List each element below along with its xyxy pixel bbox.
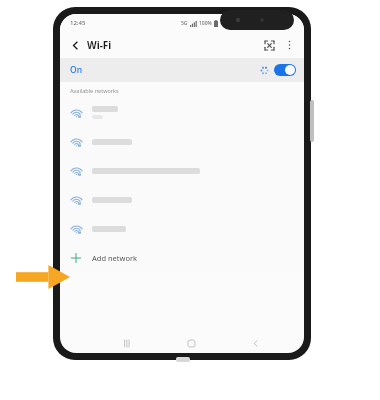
- staticText: Wi-Fi: [87, 38, 112, 52]
- button[interactable]: Add network: [60, 243, 304, 272]
- button[interactable]: [60, 185, 304, 214]
- button[interactable]: [60, 98, 304, 127]
- button[interactable]: [60, 127, 304, 156]
- staticText: 5G: [181, 20, 188, 27]
- button[interactable]: Back: [247, 335, 263, 351]
- staticText: Available networks: [70, 87, 119, 94]
- staticText: 12:45: [70, 19, 86, 27]
- staticText: On: [70, 64, 82, 76]
- button[interactable]: Back: [66, 36, 84, 54]
- button[interactable]: [60, 214, 304, 243]
- button[interactable]: Scan QR code: [260, 36, 278, 54]
- button[interactable]: Wi-Fi toggle: [274, 64, 296, 76]
- staticText: 100%: [199, 20, 212, 27]
- button[interactable]: Recent apps: [119, 335, 135, 351]
- staticText: Add network: [92, 253, 138, 263]
- button[interactable]: More options: [280, 36, 298, 54]
- button[interactable]: Home: [183, 335, 199, 351]
- button[interactable]: [60, 156, 304, 185]
- button[interactable]: On: [60, 58, 304, 82]
